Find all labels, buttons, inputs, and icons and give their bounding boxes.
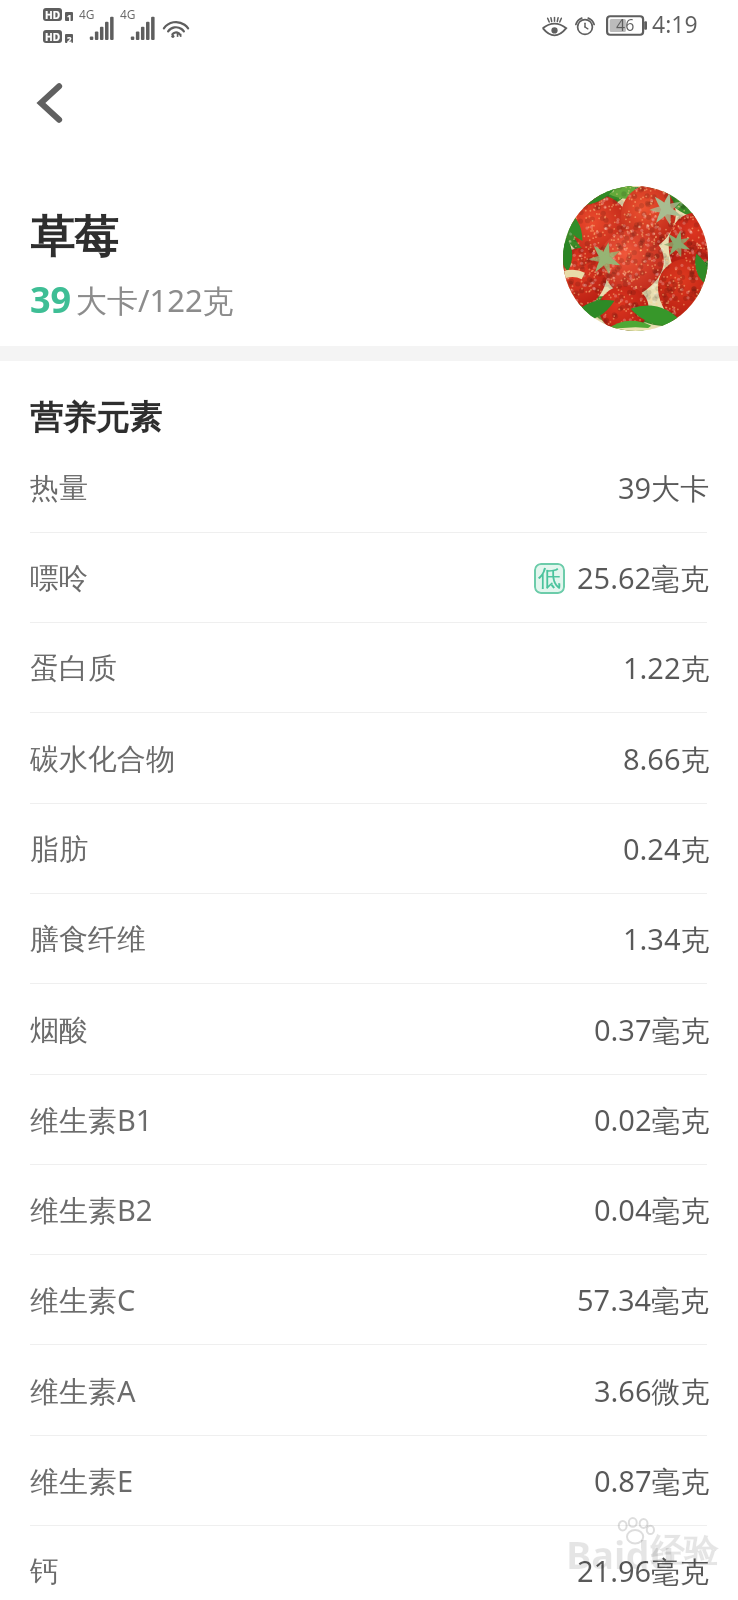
button[interactable]: 膳食纤维 — [0, 894, 738, 984]
button[interactable]: 维生素B2 — [0, 1165, 738, 1255]
staticText: 39 — [30, 275, 72, 324]
staticText: 维生素B2 — [30, 1190, 153, 1230]
staticText: 3.66微克 — [594, 1371, 710, 1411]
staticText: 营养元素 — [30, 397, 162, 439]
staticText: 大卡/122克 — [76, 279, 234, 321]
button[interactable]: 热量 — [0, 443, 738, 533]
staticText: 46 — [616, 14, 635, 35]
staticText: 0.24克 — [623, 829, 710, 869]
staticText: 维生素B1 — [30, 1100, 153, 1140]
staticText: 0.37毫克 — [594, 1010, 710, 1050]
staticText: 嘌呤 — [30, 560, 88, 597]
staticText: 草莓 — [30, 210, 118, 265]
staticText: 57.34毫克 — [577, 1280, 710, 1320]
staticText: 膳食纤维 — [30, 921, 146, 958]
staticText: 1 — [67, 12, 72, 21]
staticText: 25.62毫克 — [577, 558, 710, 598]
button[interactable]: 维生素A — [0, 1346, 738, 1436]
button[interactable]: 碳水化合物 — [0, 714, 738, 804]
staticText: 烟酸 — [30, 1012, 88, 1049]
staticText: 经验 — [650, 1530, 718, 1573]
staticText: 低 — [538, 564, 561, 593]
staticText: 1.34克 — [623, 919, 710, 959]
staticText: 4G — [120, 6, 136, 22]
button[interactable]: 维生素C — [0, 1255, 738, 1345]
staticText: 碳水化合物 — [30, 741, 175, 778]
button[interactable]: 钙 — [0, 1526, 738, 1600]
button[interactable]: 维生素B1 — [0, 1075, 738, 1165]
staticText: 蛋白质 — [30, 650, 117, 687]
button[interactable]: 嘌呤 — [0, 533, 738, 623]
button[interactable]: Back — [20, 73, 80, 133]
staticText: 0.87毫克 — [594, 1461, 710, 1501]
staticText: 0.04毫克 — [594, 1190, 710, 1230]
staticText: 钙 — [30, 1553, 59, 1590]
staticText: 维生素A — [30, 1371, 136, 1411]
button[interactable]: 维生素E — [0, 1436, 738, 1526]
button[interactable]: 脂肪 — [0, 804, 738, 894]
staticText: 4G — [79, 6, 95, 22]
staticText: 脂肪 — [30, 831, 88, 868]
staticText: HD — [45, 30, 60, 43]
staticText: HD — [45, 8, 60, 21]
staticText: 2 — [67, 34, 72, 43]
staticText: 1.22克 — [623, 648, 710, 688]
staticText: 21.96毫克 — [577, 1551, 710, 1591]
staticText: Baidu — [566, 1528, 675, 1580]
staticText: 0.02毫克 — [594, 1100, 710, 1140]
button[interactable]: 蛋白质 — [0, 623, 738, 713]
staticText: 维生素C — [30, 1280, 136, 1320]
staticText: 维生素E — [30, 1461, 134, 1501]
button[interactable]: 烟酸 — [0, 985, 738, 1075]
staticText: 4:19 — [652, 8, 698, 39]
staticText: 8.66克 — [623, 739, 710, 779]
staticText: 39大卡 — [618, 468, 710, 508]
staticText: 热量 — [30, 470, 88, 507]
